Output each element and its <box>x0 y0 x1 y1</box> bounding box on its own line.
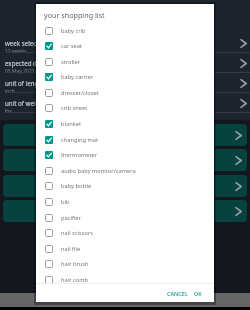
staticText: expected date <box>5 59 47 67</box>
staticText: blanket <box>61 120 81 128</box>
button[interactable]: baby carrier <box>36 70 214 83</box>
button[interactable]: changing mat <box>36 133 214 146</box>
staticText: unit of weight <box>5 99 46 107</box>
staticText: your shopping list <box>44 10 105 20</box>
staticText: lbs <box>5 108 12 115</box>
button[interactable] <box>3 200 247 222</box>
button[interactable]: crib sheet <box>36 101 214 114</box>
staticText: bib <box>61 198 70 206</box>
staticText: changing mat <box>61 136 98 144</box>
staticText: crib sheet <box>61 104 88 112</box>
staticText: stroller <box>61 58 80 66</box>
button[interactable]: unit of length <box>0 73 250 93</box>
staticText: car seat <box>61 42 82 50</box>
staticText: unit of length <box>5 79 45 87</box>
button[interactable] <box>3 175 247 197</box>
staticText: baby carrier <box>61 73 94 81</box>
button[interactable]: week selected <box>0 33 250 53</box>
staticText: thermometer <box>61 151 98 159</box>
staticText: inch <box>5 88 15 95</box>
staticText: baby bottle <box>61 182 92 190</box>
staticText: 12 weeks <box>5 48 27 55</box>
button[interactable]: OK <box>191 286 205 301</box>
button[interactable] <box>3 149 247 171</box>
staticText: hair comb <box>61 276 88 284</box>
staticText: 05 May 2021 <box>5 68 35 75</box>
staticText: OK <box>194 290 202 297</box>
button[interactable]: nail file <box>36 242 214 255</box>
button[interactable]: hair comb <box>36 273 214 286</box>
button[interactable]: baby crib <box>36 24 214 37</box>
button[interactable]: CANCEL <box>164 286 191 301</box>
staticText: nail scissors <box>61 229 94 237</box>
staticText: nail file <box>61 245 81 253</box>
button[interactable]: bib <box>36 195 214 208</box>
button[interactable] <box>3 124 247 146</box>
staticText: week selected <box>5 39 46 47</box>
button[interactable]: unit of weight <box>0 93 250 113</box>
staticText: baby crib <box>61 27 86 35</box>
button[interactable]: car seat <box>36 39 214 52</box>
button[interactable]: pacifier <box>36 211 214 224</box>
staticText: audio baby monitor/camera <box>61 167 136 175</box>
button[interactable]: expected date <box>0 53 250 73</box>
button[interactable]: hair brush <box>36 257 214 270</box>
button[interactable]: audio baby monitor/camera <box>36 164 214 177</box>
staticText: CANCEL <box>167 290 188 297</box>
button[interactable]: nail scissors <box>36 226 214 239</box>
button[interactable]: dresser/closet <box>36 86 214 99</box>
button[interactable]: stroller <box>36 55 214 68</box>
button[interactable]: baby bottle <box>36 179 214 192</box>
staticText: pacifier <box>61 214 81 222</box>
button[interactable]: thermometer <box>36 148 214 161</box>
staticText: dresser/closet <box>61 89 99 97</box>
staticText: hair brush <box>61 260 89 268</box>
button[interactable]: blanket <box>36 117 214 130</box>
